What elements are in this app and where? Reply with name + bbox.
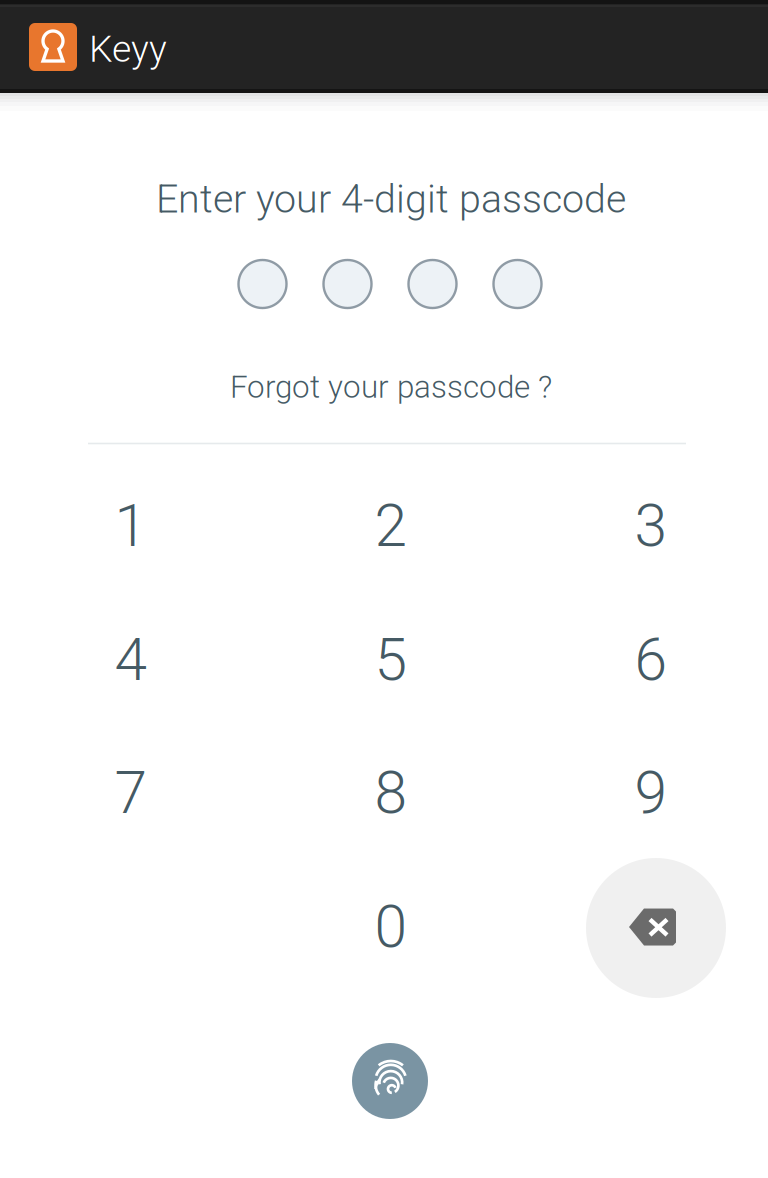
staticText: Keyy: [89, 27, 167, 71]
button[interactable]: Unlock with fingerprint: [342, 1033, 438, 1129]
button[interactable]: 6: [521, 593, 768, 727]
staticText: 3: [634, 492, 667, 560]
staticText: Enter your 4-digit passcode: [156, 176, 626, 222]
button[interactable]: 7: [1, 726, 260, 860]
staticText: 4: [114, 626, 147, 694]
staticText: 9: [634, 759, 667, 827]
button[interactable]: 8: [261, 726, 520, 860]
button[interactable]: 4: [1, 593, 260, 727]
button[interactable]: 0: [261, 860, 520, 994]
staticText: 5: [374, 626, 407, 694]
button[interactable]: 1: [1, 459, 260, 593]
staticText: 0: [374, 893, 407, 961]
button[interactable]: Delete: [526, 858, 768, 998]
button[interactable]: Forgot your passcode ?: [181, 359, 601, 415]
staticText: Forgot your passcode ?: [230, 369, 552, 405]
button[interactable]: 5: [261, 593, 520, 727]
button[interactable]: 9: [521, 726, 768, 860]
staticText: 8: [374, 759, 407, 827]
staticText: 2: [374, 492, 407, 560]
staticText: 1: [114, 492, 147, 560]
button[interactable]: 2: [261, 459, 520, 593]
staticText: 6: [634, 626, 667, 694]
button[interactable]: 3: [521, 459, 768, 593]
staticText: 7: [114, 759, 147, 827]
